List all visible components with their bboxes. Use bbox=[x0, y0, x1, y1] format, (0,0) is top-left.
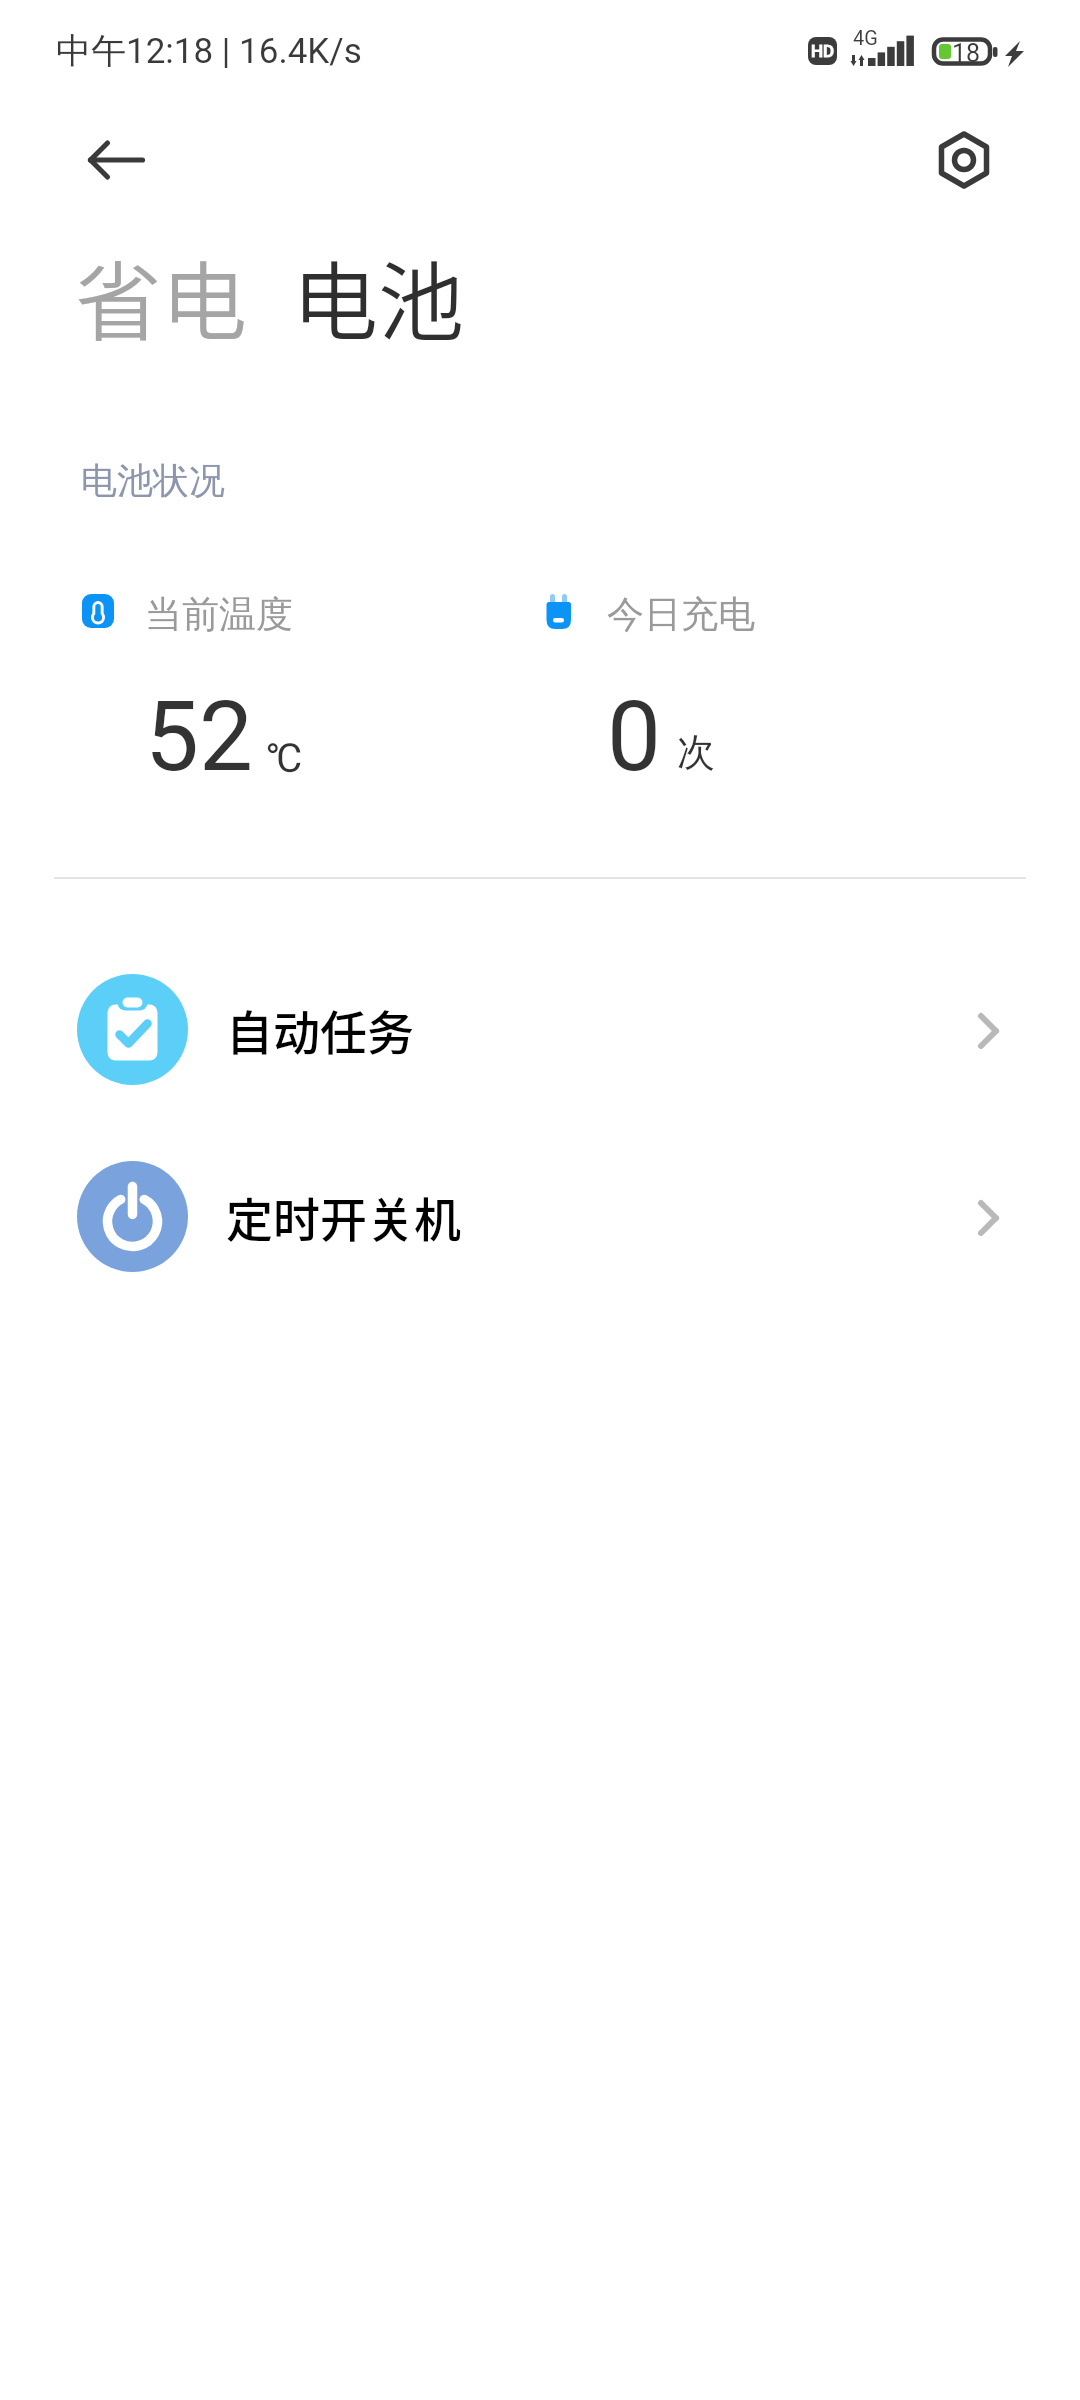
staticText: 次 bbox=[677, 728, 715, 776]
staticText: 电池状况 bbox=[81, 458, 225, 503]
button[interactable]: 电池 bbox=[282, 224, 474, 369]
staticText: 当前温度 bbox=[145, 591, 293, 638]
staticText: 中午12:18 | 16.4K/s bbox=[56, 29, 362, 73]
staticText: 自动任务 bbox=[226, 995, 414, 1063]
staticText: 18 bbox=[952, 39, 981, 68]
staticText: 今日充电 bbox=[607, 591, 755, 638]
staticText: HD bbox=[811, 41, 835, 61]
button[interactable]: Back bbox=[76, 124, 158, 196]
staticText: 省电 bbox=[75, 234, 247, 359]
button[interactable]: Settings bbox=[928, 124, 1000, 196]
staticText: 0 bbox=[607, 681, 661, 794]
staticText: 定时开关机 bbox=[226, 1182, 461, 1250]
staticText: 电池 bbox=[292, 234, 464, 359]
staticText: ℃ bbox=[267, 735, 303, 782]
button[interactable]: 自动任务 bbox=[0, 978, 1080, 1090]
button[interactable]: 省电 bbox=[65, 224, 257, 369]
staticText: 52 bbox=[145, 681, 253, 794]
button[interactable]: 定时开关机 bbox=[0, 1165, 1080, 1277]
staticText: 4G bbox=[853, 26, 878, 49]
